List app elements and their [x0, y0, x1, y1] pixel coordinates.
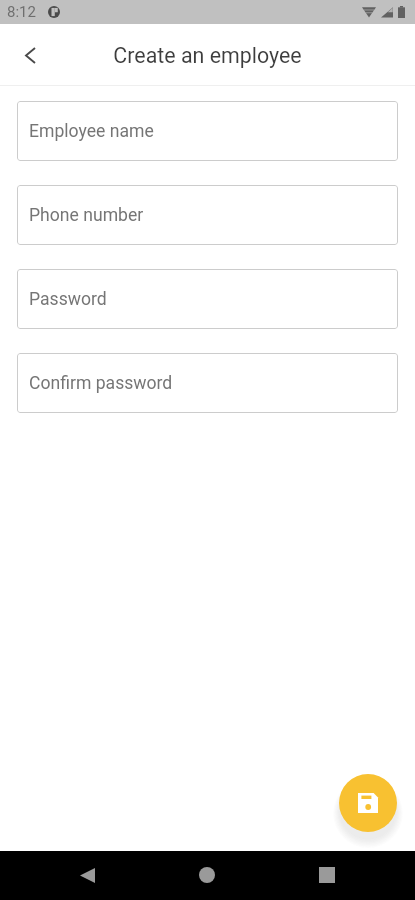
button[interactable]: Confirm password: [17, 353, 398, 413]
staticText: Phone number: [29, 205, 144, 226]
button[interactable]: Back: [67, 855, 107, 895]
staticText: Create an employee: [113, 43, 302, 68]
button[interactable]: Password: [17, 269, 398, 329]
button[interactable]: Phone number: [17, 185, 398, 245]
button[interactable]: Save: [339, 774, 397, 832]
staticText: Confirm password: [29, 373, 173, 394]
button[interactable]: Home: [187, 855, 227, 895]
staticText: 8:12: [7, 3, 36, 21]
staticText: Employee name: [29, 121, 154, 142]
button[interactable]: Back: [9, 34, 52, 77]
button[interactable]: Employee name: [17, 101, 398, 161]
button[interactable]: Recent apps: [307, 855, 347, 895]
staticText: Password: [29, 289, 107, 310]
